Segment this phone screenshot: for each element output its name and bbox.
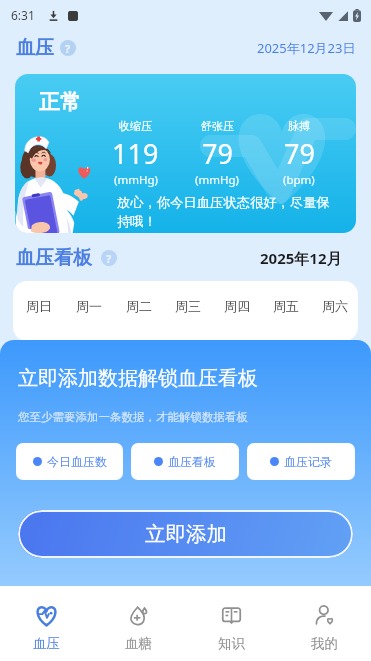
staticText: (mmHg) xyxy=(195,172,239,188)
staticText: 周三 xyxy=(175,298,201,314)
staticText: 周六 xyxy=(322,298,348,314)
staticText: 立即添加 xyxy=(145,521,227,547)
staticText: 2025年12月 xyxy=(260,248,342,268)
button[interactable]: 血压 xyxy=(16,36,76,60)
button[interactable]: 血压看板 xyxy=(131,443,239,480)
staticText: 血压 xyxy=(33,635,60,652)
staticText: 周日 xyxy=(26,298,52,314)
staticText: ? xyxy=(106,251,112,266)
staticText: 周二 xyxy=(126,298,152,314)
staticText: 2025年12月23日 xyxy=(257,39,356,57)
staticText: 今日血压数 xyxy=(47,454,107,469)
staticText: 收缩压 xyxy=(119,119,152,133)
staticText: ? xyxy=(65,41,71,56)
button[interactable]: 今日血压数 xyxy=(16,443,123,480)
button[interactable]: 血压记录 xyxy=(247,443,355,480)
staticText: 79 xyxy=(284,135,315,172)
staticText: 血压记录 xyxy=(284,454,332,469)
button[interactable]: 周二 xyxy=(114,293,163,319)
staticText: 放心，你今日血压状态很好，尽量保持哦！ xyxy=(117,194,333,230)
button[interactable]: 知识 xyxy=(185,586,278,661)
button[interactable]: 正常 xyxy=(15,74,356,233)
button[interactable]: 周一 xyxy=(64,293,114,319)
staticText: 知识 xyxy=(218,635,245,652)
staticText: 119 xyxy=(112,135,159,172)
button[interactable]: 我的 xyxy=(278,586,371,661)
staticText: (mmHg) xyxy=(114,172,158,188)
staticText: 周一 xyxy=(76,298,102,314)
staticText: 血压看板 xyxy=(16,246,92,270)
button[interactable]: 周四 xyxy=(212,293,261,319)
button[interactable]: 血糖 xyxy=(92,586,185,661)
staticText: 我的 xyxy=(311,635,338,652)
staticText: 周四 xyxy=(224,298,250,314)
button[interactable]: 血压看板 xyxy=(16,246,117,270)
staticText: 您至少需要添加一条数据，才能解锁数据看板 xyxy=(18,410,248,424)
staticText: 舒张压 xyxy=(201,119,234,133)
button[interactable]: 周五 xyxy=(261,293,310,319)
button[interactable]: 周六 xyxy=(310,293,358,319)
button[interactable]: 周日 xyxy=(14,293,64,319)
staticText: (bpm) xyxy=(283,172,315,188)
button[interactable]: 周三 xyxy=(163,293,212,319)
staticText: 79 xyxy=(202,135,233,172)
button[interactable]: 血压 xyxy=(0,586,92,661)
staticText: 周五 xyxy=(273,298,299,314)
button[interactable]: 立即添加 xyxy=(18,510,353,558)
staticText: 血压 xyxy=(16,36,54,60)
staticText: 正常 xyxy=(39,89,81,115)
staticText: 血糖 xyxy=(125,635,152,652)
staticText: 脉搏 xyxy=(288,119,310,133)
staticText: 血压看板 xyxy=(168,454,216,469)
staticText: 立即添加数据解锁血压看板 xyxy=(18,366,258,391)
staticText: 6:31 xyxy=(11,7,35,23)
